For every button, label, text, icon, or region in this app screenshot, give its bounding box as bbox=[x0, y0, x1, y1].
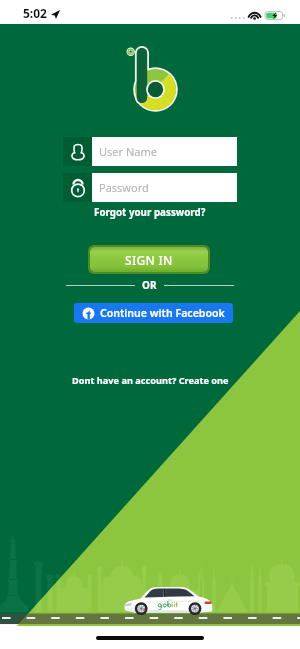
staticText: User Name bbox=[99, 144, 157, 159]
staticText: SIGN IN bbox=[125, 252, 173, 268]
staticText: Continue with Facebook bbox=[100, 306, 225, 320]
button[interactable]: SIGN IN bbox=[90, 247, 208, 272]
staticText: 5:02 bbox=[23, 5, 47, 21]
button[interactable]: Forgot your password? bbox=[94, 206, 206, 219]
button[interactable]: Dont have an account? Create one bbox=[72, 374, 229, 387]
staticText: OR bbox=[142, 278, 157, 292]
button[interactable]: User Name bbox=[63, 137, 237, 166]
button[interactable]: Password bbox=[63, 173, 237, 202]
staticText: Password bbox=[99, 180, 149, 195]
button[interactable]: Continue with Facebook bbox=[74, 303, 233, 323]
